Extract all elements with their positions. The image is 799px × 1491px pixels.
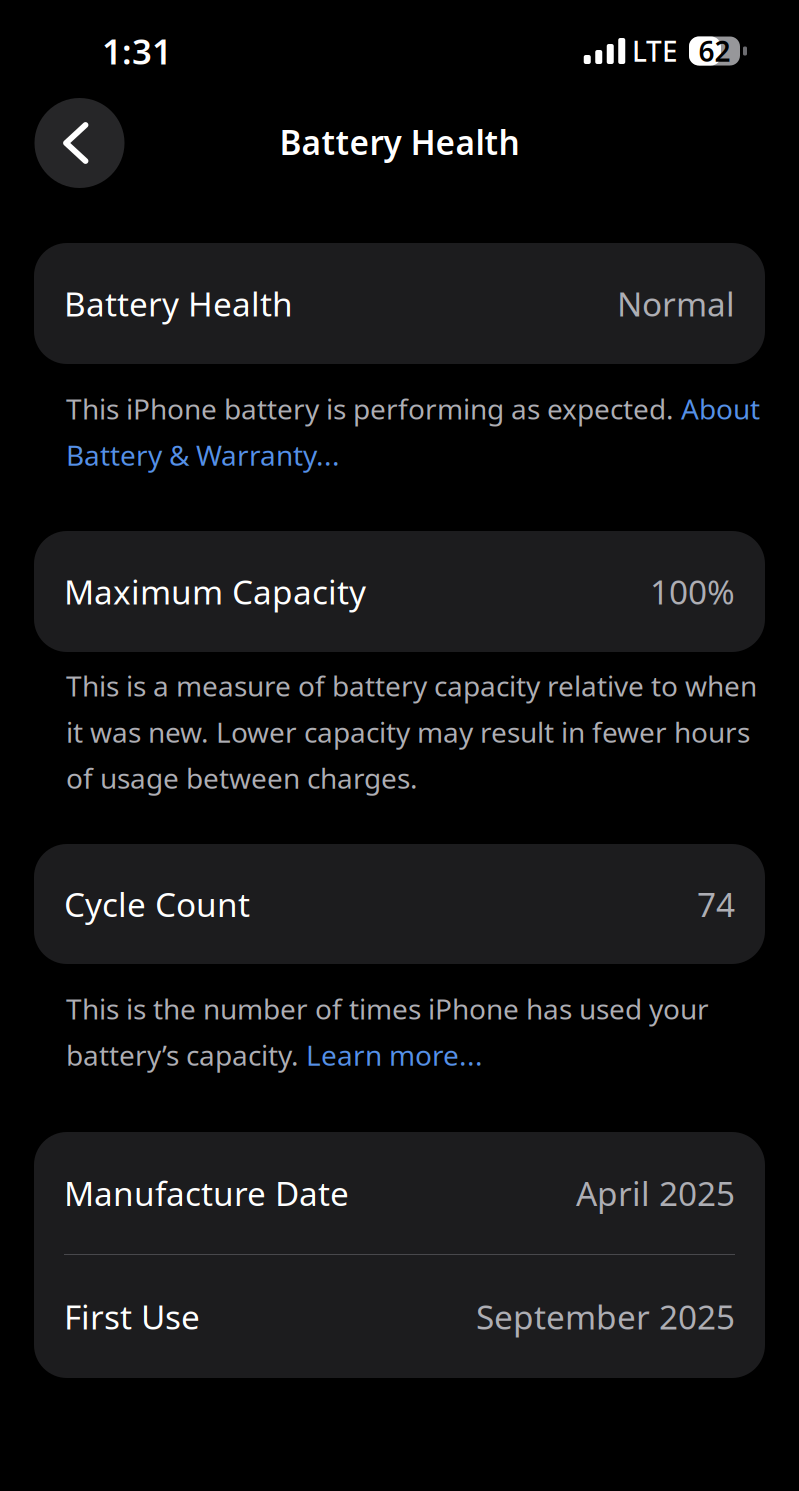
staticText: Manufacture Date bbox=[64, 1171, 349, 1215]
staticText: This iPhone battery is performing as exp… bbox=[66, 390, 760, 473]
staticText: Normal bbox=[617, 281, 735, 326]
staticText: September 2025 bbox=[476, 1294, 735, 1339]
staticText: 100% bbox=[650, 569, 735, 614]
staticText: Battery Health bbox=[279, 120, 519, 164]
staticText: Battery Health bbox=[64, 281, 293, 326]
staticText: This is the number of times iPhone has u… bbox=[66, 990, 709, 1073]
staticText: Maximum Capacity bbox=[64, 569, 366, 614]
button[interactable]: Cycle Count bbox=[34, 844, 765, 964]
staticText: LTE bbox=[632, 32, 678, 70]
staticText: First Use bbox=[64, 1294, 200, 1339]
button[interactable]: Battery Health bbox=[34, 243, 765, 364]
button[interactable]: Back bbox=[34, 98, 125, 188]
button[interactable]: Manufacture Date bbox=[34, 1132, 765, 1254]
staticText: This is a measure of battery capacity re… bbox=[66, 667, 757, 796]
staticText: 62 bbox=[698, 32, 730, 70]
button[interactable]: Maximum Capacity bbox=[34, 531, 765, 652]
staticText: Cycle Count bbox=[64, 882, 250, 926]
button[interactable]: First Use bbox=[34, 1255, 765, 1378]
staticText: April 2025 bbox=[576, 1171, 735, 1215]
staticText: 74 bbox=[697, 882, 735, 926]
staticText: 1:31 bbox=[102, 28, 172, 74]
